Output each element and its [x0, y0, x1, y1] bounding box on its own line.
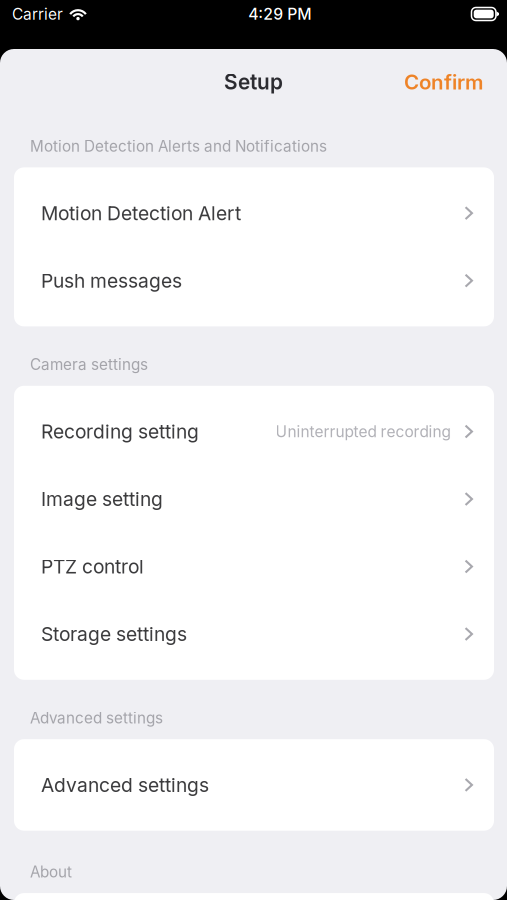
staticText: Carrier [12, 5, 63, 23]
staticText: Camera settings [30, 355, 148, 374]
staticText: Setup [224, 69, 283, 95]
staticText: Motion Detection Alerts and Notification… [30, 137, 327, 155]
button[interactable]: Storage settings [14, 600, 494, 668]
staticText: Storage settings [41, 622, 187, 646]
button[interactable]: Image setting [14, 465, 494, 533]
staticText: Advanced settings [41, 773, 209, 796]
button[interactable]: PTZ control [14, 533, 494, 600]
button[interactable]: Confirm [404, 70, 483, 94]
button[interactable]: Advanced settings [14, 751, 494, 819]
staticText: Motion Detection Alert [41, 201, 241, 225]
staticText: Confirm [404, 70, 483, 94]
staticText: Image setting [41, 487, 163, 511]
staticText: PTZ control [41, 555, 144, 578]
staticText: Push messages [41, 269, 182, 292]
button[interactable]: Recording setting [14, 398, 494, 465]
button[interactable]: Motion Detection Alert [14, 179, 494, 247]
button[interactable]: Push messages [14, 247, 494, 314]
staticText: Uninterrupted recording [275, 422, 450, 441]
staticText: Recording setting [41, 420, 199, 443]
staticText: Advanced settings [30, 709, 163, 727]
staticText: About [30, 863, 72, 881]
staticText: 4:29 PM [248, 4, 311, 23]
